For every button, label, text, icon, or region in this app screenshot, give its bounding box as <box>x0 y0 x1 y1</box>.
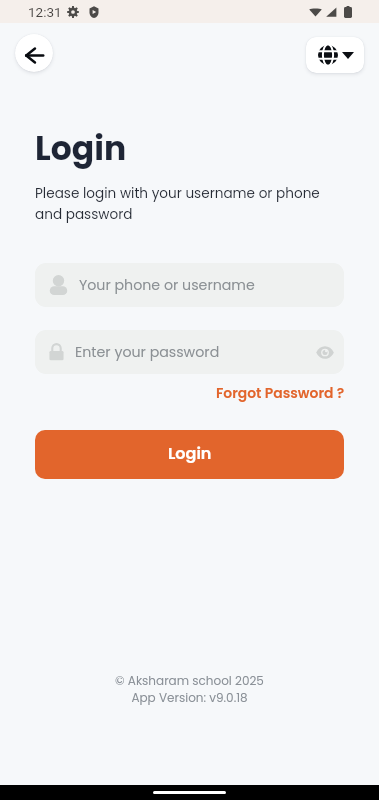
button[interactable]: Enter your password <box>35 330 344 374</box>
staticText: Forgot Password ? <box>216 383 345 402</box>
staticText: Please login with your username or phone… <box>35 184 320 224</box>
button[interactable]: Login <box>35 430 344 479</box>
button[interactable]: Show password <box>316 345 334 360</box>
staticText: Enter your password <box>75 342 220 362</box>
button[interactable]: Back <box>15 34 53 72</box>
button[interactable]: Your phone or username <box>35 263 344 307</box>
staticText: App Version: v9.0.18 <box>131 689 248 706</box>
staticText: Login <box>35 125 127 171</box>
staticText: Your phone or username <box>79 275 255 295</box>
staticText: © Aksharam school 2025 <box>115 672 264 689</box>
staticText: Login <box>168 442 212 464</box>
button[interactable]: Forgot Password ? <box>216 383 345 402</box>
staticText: 12:31 <box>28 4 62 20</box>
button[interactable]: Change language <box>306 37 364 73</box>
